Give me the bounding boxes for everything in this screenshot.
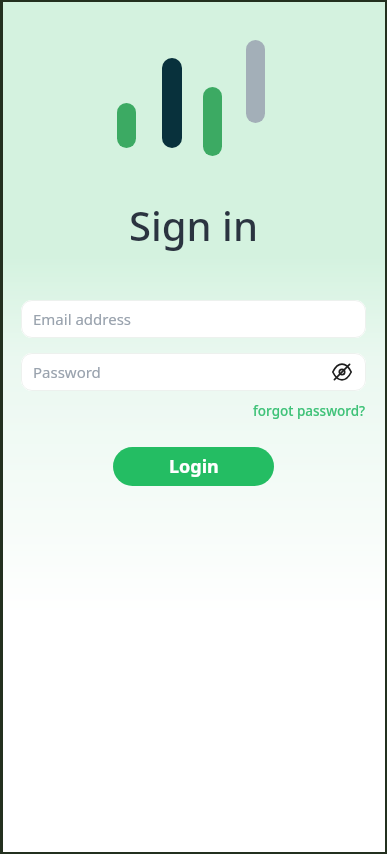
staticText: Email address [33,309,132,329]
staticText: Sign in [129,198,258,252]
button[interactable]: Email address [21,300,366,338]
staticText: Password [33,362,101,382]
button[interactable]: Password [21,353,366,391]
button[interactable]: forgot password? [251,400,368,422]
button[interactable]: Show password [329,359,355,385]
button[interactable]: Login [113,447,274,486]
staticText: Login [169,454,219,479]
staticText: forgot password? [253,402,366,420]
